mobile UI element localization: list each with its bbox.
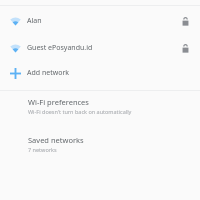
staticText: Alan [27, 16, 182, 26]
button[interactable]: Wi-Fi signal [0, 10, 200, 32]
staticText: 7 networks [28, 146, 57, 153]
other: Wi-Fi signal [10, 43, 21, 53]
button[interactable]: Wi-Fi signal [0, 37, 200, 59]
other: Wi-Fi signal [10, 16, 21, 26]
button[interactable]: Wi-Fi preferences [0, 91, 200, 120]
other: Secured network [182, 44, 189, 53]
staticText: Add network [27, 68, 70, 78]
staticText: Wi-Fi preferences [28, 97, 89, 107]
other: Add [10, 68, 21, 79]
button[interactable]: Saved networks [0, 132, 200, 158]
other: Secured network [182, 17, 189, 26]
staticText: Guest ePosyandu.id [27, 43, 182, 53]
staticText: Wi-Fi doesn't turn back on automatically [28, 108, 132, 115]
button[interactable]: Add [0, 62, 200, 84]
staticText: Saved networks [28, 135, 84, 145]
